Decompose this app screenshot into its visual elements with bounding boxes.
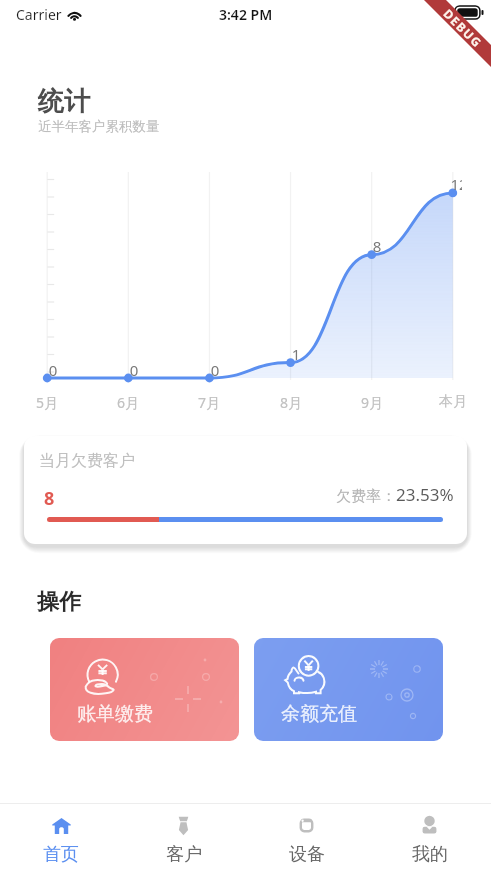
staticText: 近半年客户累积数量: [38, 118, 160, 135]
staticText: 当月欠费客户: [39, 451, 135, 471]
button[interactable]: 当月欠费客户: [24, 436, 467, 544]
staticText: 1: [276, 344, 316, 364]
staticText: 客户: [166, 843, 202, 866]
staticText: 5月: [22, 393, 72, 412]
staticText: 设备: [289, 843, 325, 866]
staticText: 余额充值: [281, 702, 357, 726]
staticText: DEBUG: [433, 0, 491, 58]
staticText: 账单缴费: [77, 702, 153, 726]
staticText: 统计: [38, 85, 90, 118]
button[interactable]: 首页: [0, 804, 122, 866]
staticText: 0: [195, 360, 235, 380]
staticText: 6月: [103, 393, 153, 412]
staticText: 23.53%: [396, 483, 454, 506]
staticText: 操作: [37, 588, 81, 616]
button[interactable]: 设备: [245, 804, 368, 866]
button[interactable]: 余额充值: [254, 638, 443, 741]
staticText: 12: [439, 174, 462, 194]
staticText: 7月: [184, 393, 234, 412]
staticText: 9月: [347, 393, 397, 412]
staticText: 8: [44, 486, 55, 511]
staticText: 8月: [266, 393, 316, 412]
button[interactable]: 我的: [368, 804, 491, 866]
button[interactable]: 客户: [122, 804, 245, 866]
staticText: 我的: [412, 843, 448, 866]
staticText: 0: [33, 360, 73, 380]
staticText: 3:42 PM: [219, 5, 273, 24]
staticText: 首页: [43, 843, 79, 866]
staticText: 欠费率：: [336, 487, 396, 506]
staticText: Carrier: [16, 5, 62, 24]
button[interactable]: 账单缴费: [50, 638, 239, 741]
staticText: 8: [357, 236, 397, 256]
staticText: 本月: [428, 393, 478, 411]
staticText: 0: [114, 360, 154, 380]
